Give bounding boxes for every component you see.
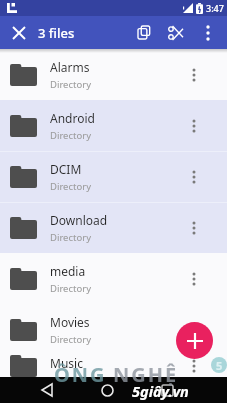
staticText: Movies	[50, 314, 90, 330]
button[interactable]	[179, 254, 209, 304]
button[interactable]	[179, 355, 209, 377]
staticText: Directory	[50, 282, 91, 295]
staticText: 5	[216, 358, 223, 373]
button[interactable]	[0, 16, 38, 49]
button[interactable]: media	[0, 253, 227, 304]
staticText: Alarms	[50, 59, 90, 75]
staticText: 5giây.vn	[132, 381, 189, 401]
staticText: 3:47	[206, 2, 224, 14]
button[interactable]: Music	[0, 355, 227, 377]
button[interactable]	[179, 50, 209, 100]
button[interactable]	[33, 377, 61, 403]
staticText: Download	[50, 212, 108, 228]
staticText: Directory	[50, 180, 91, 193]
staticText: Directory	[50, 231, 91, 244]
staticText: media	[50, 263, 86, 279]
button[interactable]: Movies	[0, 304, 227, 355]
button[interactable]	[179, 203, 209, 253]
staticText: DCIM	[50, 161, 82, 177]
button[interactable]	[179, 152, 209, 202]
button[interactable]	[153, 377, 181, 403]
staticText: Music	[50, 355, 83, 371]
staticText: ÔNG	[54, 361, 107, 388]
button[interactable]	[179, 305, 209, 355]
staticText: Directory	[50, 333, 91, 346]
button[interactable]	[93, 377, 121, 403]
button[interactable]	[176, 322, 213, 359]
button[interactable]: Android	[0, 100, 227, 151]
button[interactable]	[195, 16, 221, 49]
button[interactable]: DCIM	[0, 151, 227, 202]
staticText: Directory	[50, 78, 91, 91]
staticText: Android	[50, 110, 95, 126]
staticText: Directory	[50, 374, 91, 377]
staticText: NGHỆ	[113, 361, 179, 388]
button[interactable]	[179, 101, 209, 151]
staticText: 3 files	[38, 24, 75, 42]
button[interactable]	[161, 16, 191, 49]
button[interactable]: Download	[0, 202, 227, 253]
button[interactable]	[129, 16, 159, 49]
button[interactable]: Alarms	[0, 49, 227, 100]
staticText: Directory	[50, 129, 91, 142]
